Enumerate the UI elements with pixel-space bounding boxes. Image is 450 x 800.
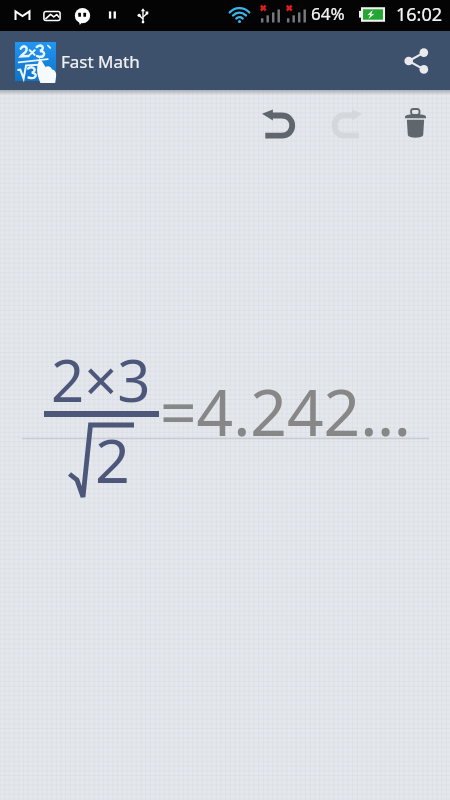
button[interactable]: Delete	[382, 95, 448, 151]
button[interactable]: Share	[394, 31, 450, 90]
button[interactable]: Redo	[313, 95, 381, 151]
staticText: =4.242…	[160, 368, 411, 455]
staticText: 2×3	[51, 340, 151, 419]
staticText: 64%	[311, 2, 345, 25]
staticText: 2	[95, 418, 130, 501]
staticText: Fast Math	[61, 50, 140, 73]
button[interactable]: Undo	[244, 95, 312, 151]
staticText: 16:02	[396, 2, 443, 27]
